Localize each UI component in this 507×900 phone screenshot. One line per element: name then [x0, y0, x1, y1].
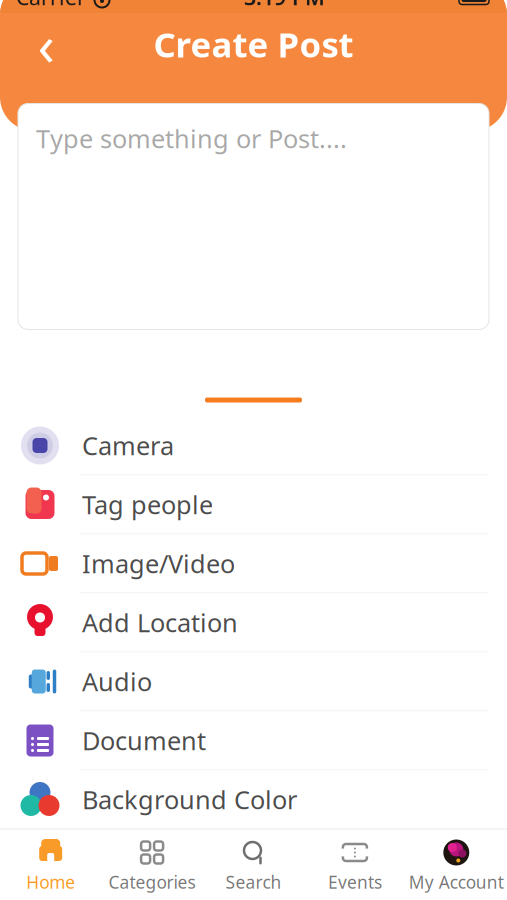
staticText: Home [26, 870, 75, 893]
staticText: Tag people [82, 488, 213, 521]
staticText: Events [328, 870, 382, 893]
button[interactable]: Home [0, 829, 101, 900]
button[interactable]: Back [22, 20, 70, 68]
button[interactable]: Audio [0, 652, 507, 711]
button[interactable]: Camera [0, 416, 507, 475]
button[interactable]: Image/Video [0, 534, 507, 593]
button[interactable]: Events [304, 829, 406, 900]
staticText: Carrier [16, 0, 86, 11]
staticText: Background Color [82, 783, 297, 816]
staticText: Document [82, 724, 206, 757]
staticText: 3:19 PM [244, 0, 325, 11]
staticText: My Account [409, 870, 504, 893]
button[interactable]: Search [203, 829, 304, 900]
staticText: Search [225, 870, 281, 893]
staticText: Add Location [82, 606, 238, 639]
button[interactable]: Background Color [0, 770, 507, 828]
button[interactable]: Add Location [0, 593, 507, 652]
staticText: Categories [109, 870, 196, 893]
button[interactable]: Document [0, 711, 507, 770]
button[interactable]: Tag people [0, 475, 507, 534]
staticText: ‹ [37, 7, 54, 81]
staticText: Create Post [153, 21, 353, 67]
staticText: Type something or Post.... [36, 121, 347, 155]
staticText: Image/Video [82, 547, 235, 580]
staticText: Audio [82, 665, 152, 698]
staticText: Camera [82, 429, 174, 462]
button[interactable]: Type something or Post.... [0, 103, 507, 329]
button[interactable]: Categories [101, 829, 203, 900]
button[interactable]: My Account [406, 829, 507, 900]
